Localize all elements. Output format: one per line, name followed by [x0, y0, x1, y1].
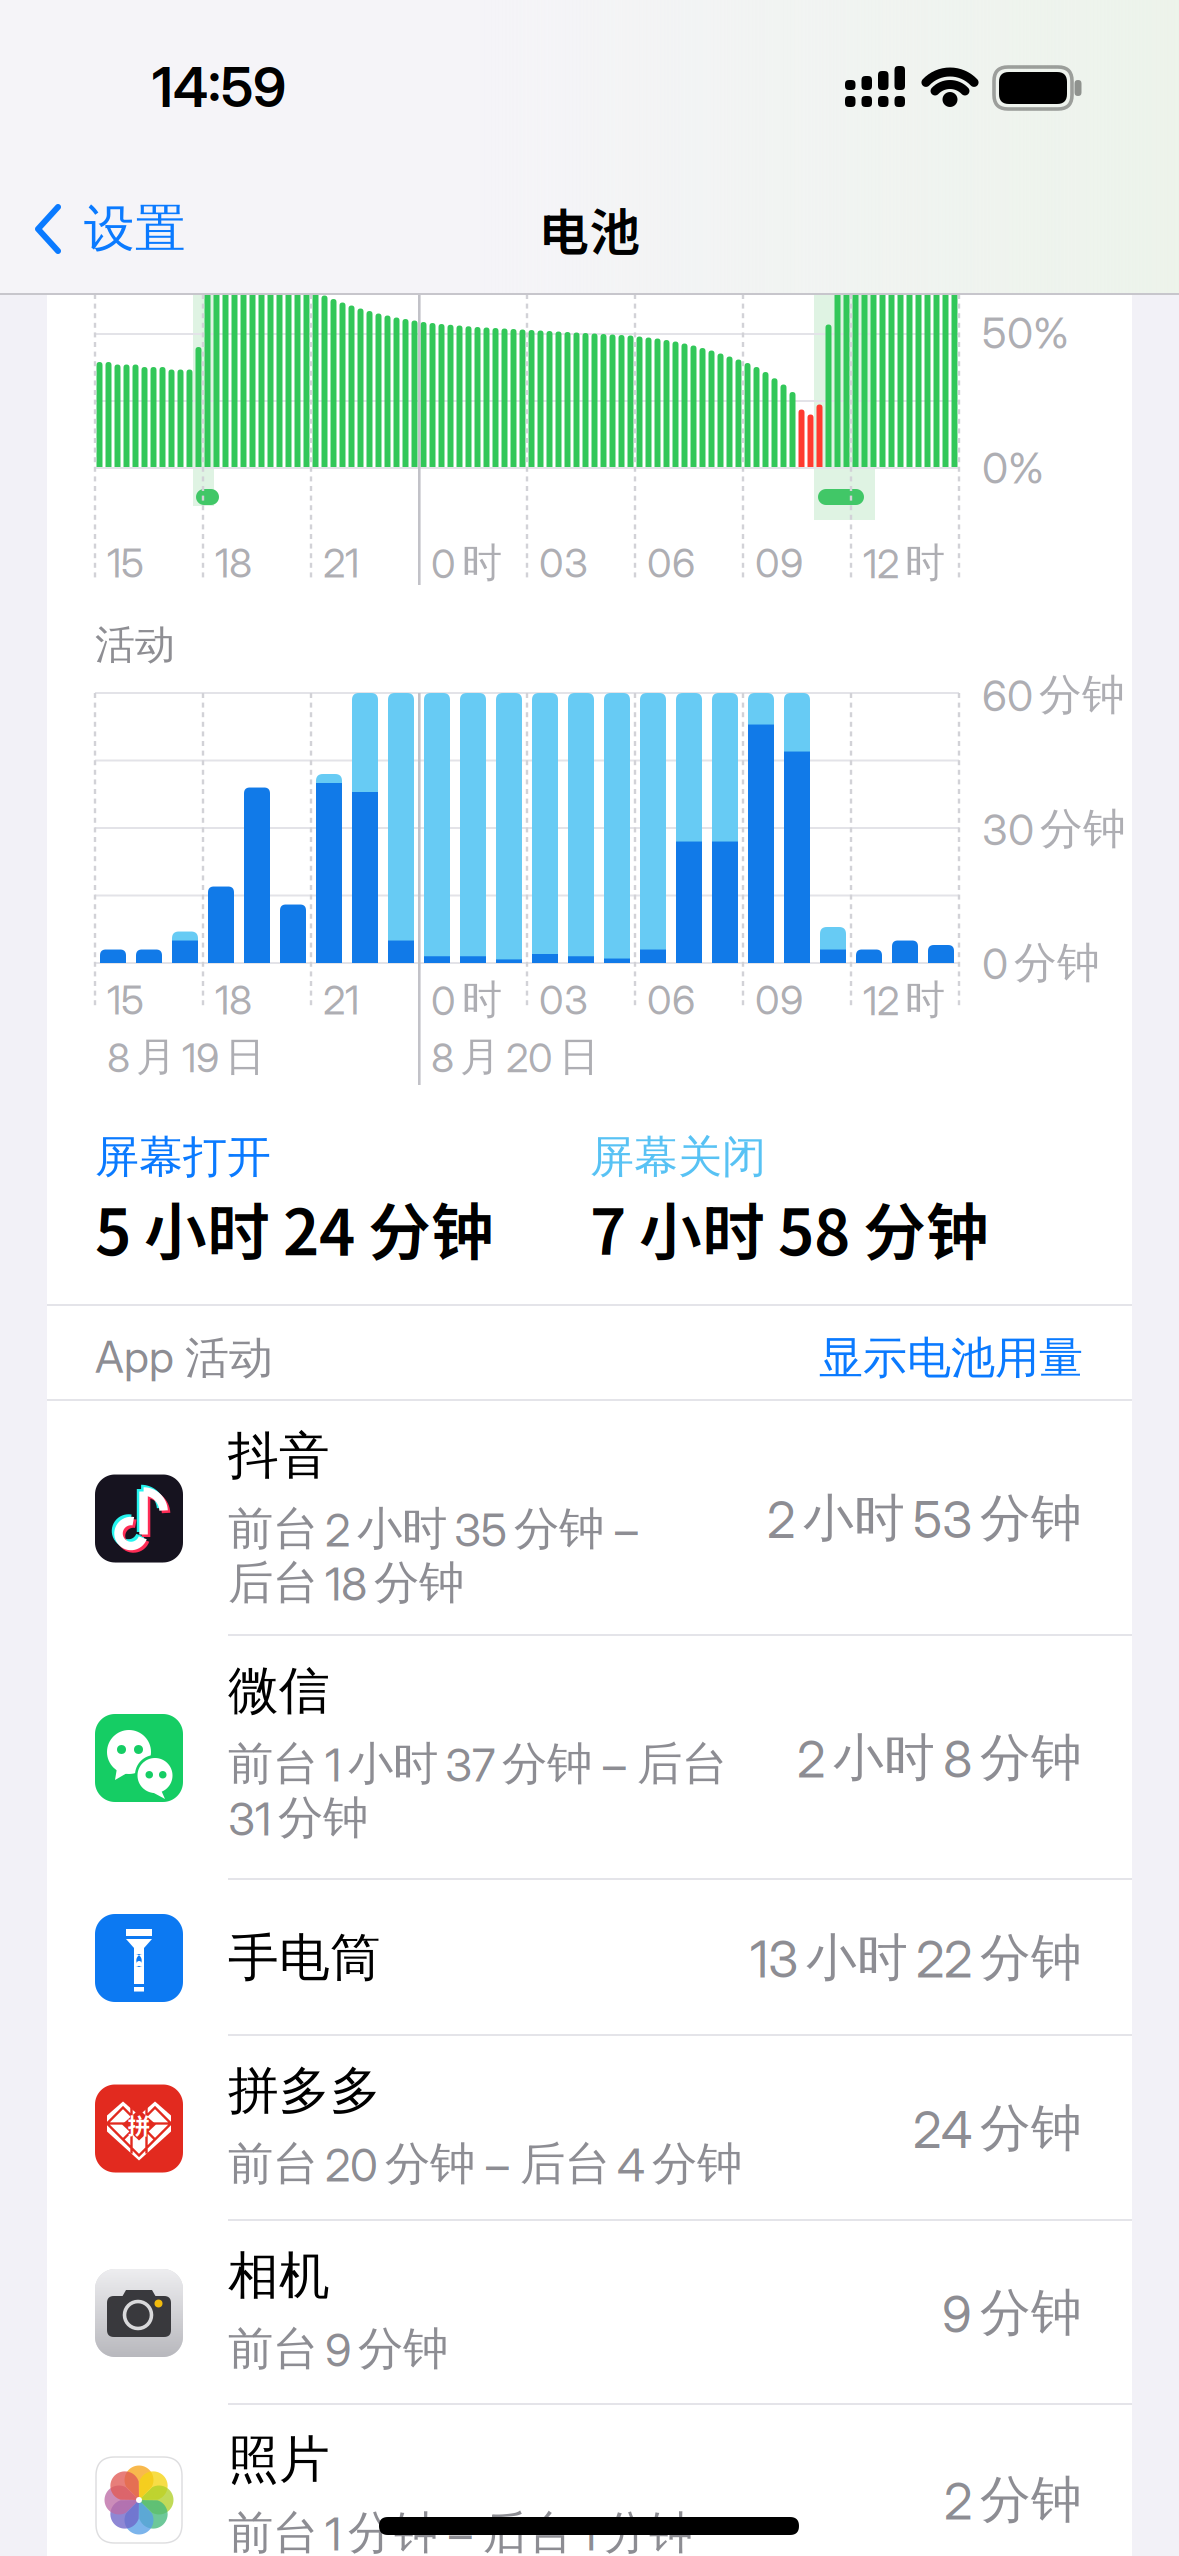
staticText: 09: [755, 976, 803, 1024]
staticText: 30 分钟: [982, 802, 1126, 856]
staticText: 7 小时 58 分钟: [590, 1183, 989, 1273]
staticText: 8 月 19 日: [107, 1032, 265, 1082]
staticText: 13 小时 22 分钟: [750, 1926, 1082, 1990]
staticText: 21: [323, 976, 359, 1024]
staticText: 03: [539, 539, 588, 587]
staticText: 拼多多: [228, 2059, 381, 2123]
staticText: 12 时: [863, 538, 945, 588]
staticText: 前台 1 小时 37 分钟 – 后台: [228, 1735, 727, 1792]
staticText: 8 月 20 日: [431, 1032, 599, 1082]
staticText: 后台 18 分钟: [228, 1554, 464, 1611]
button[interactable]: 拼: [47, 2036, 1132, 2221]
button[interactable]: 照片: [47, 2405, 1132, 2556]
staticText: 15: [107, 976, 144, 1024]
staticText: 12 时: [863, 975, 945, 1025]
staticText: 相机: [228, 2244, 330, 2308]
staticText: 18: [215, 539, 252, 587]
staticText: 拼: [127, 2108, 150, 2141]
staticText: 24 分钟: [913, 2097, 1082, 2160]
staticText: 活动: [95, 620, 175, 670]
staticText: 抖音: [228, 1424, 330, 1488]
button[interactable]: 微信: [47, 1636, 1132, 1880]
staticText: 50%: [982, 307, 1069, 359]
staticText: 15: [107, 539, 144, 587]
staticText: 微信: [228, 1659, 330, 1723]
staticText: 设置: [84, 197, 186, 261]
button[interactable]: 屏幕关闭: [590, 1122, 1070, 1262]
staticText: 2 分钟: [944, 2468, 1082, 2532]
staticText: 5 小时 24 分钟: [95, 1183, 494, 1273]
staticText: 显示电池用量: [819, 1330, 1083, 1386]
staticText: 手电筒: [228, 1926, 381, 1990]
staticText: 14:59: [152, 54, 286, 120]
staticText: 09: [755, 539, 803, 587]
button[interactable]: 手电筒: [47, 1880, 1132, 2036]
button[interactable]: 屏幕打开: [95, 1122, 575, 1262]
staticText: 前台 2 小时 35 分钟 –: [228, 1500, 638, 1557]
staticText: 前台 9 分钟: [228, 2320, 448, 2377]
staticText: 前台 20 分钟 – 后台 4 分钟: [228, 2135, 742, 2192]
staticText: 06: [647, 976, 695, 1024]
staticText: 前台 1 分钟 – 后台 1 分钟: [228, 2504, 693, 2556]
staticText: 0%: [982, 442, 1044, 494]
staticText: 06: [647, 539, 695, 587]
button[interactable]: 抖音: [47, 1401, 1132, 1636]
staticText: 18: [215, 976, 252, 1024]
staticText: 屏幕打开: [95, 1129, 271, 1185]
staticText: 0 分钟: [982, 936, 1100, 990]
staticText: 31 分钟: [228, 1789, 368, 1846]
staticText: 2 小时 8 分钟: [797, 1726, 1082, 1790]
staticText: 21: [323, 539, 359, 587]
button[interactable]: 相机: [47, 2221, 1132, 2405]
staticText: 9 分钟: [942, 2281, 1082, 2345]
button[interactable]: 显示电池用量: [663, 1323, 1083, 1393]
staticText: 2 小时 53 分钟: [767, 1487, 1082, 1550]
staticText: 电池: [538, 192, 640, 266]
staticText: App 活动: [95, 1330, 273, 1386]
staticText: 60 分钟: [982, 668, 1125, 722]
staticText: 0 时: [431, 538, 502, 588]
staticText: 屏幕关闭: [590, 1129, 766, 1185]
staticText: 03: [539, 976, 588, 1024]
staticText: 照片: [228, 2428, 330, 2492]
staticText: 0 时: [431, 975, 502, 1025]
button[interactable]: 返回设置: [30, 199, 250, 259]
